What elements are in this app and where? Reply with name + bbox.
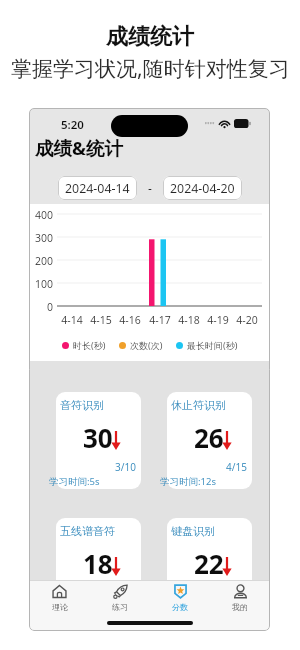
button[interactable]: 2024-04-20	[163, 176, 242, 200]
button[interactable]: 理论	[29, 584, 90, 614]
staticText: 分数	[172, 602, 188, 612]
staticText: 4-19	[204, 313, 232, 327]
staticText: 音符识别	[60, 398, 104, 412]
staticText: 30	[83, 420, 113, 455]
staticText: 3/10	[56, 460, 136, 474]
staticText: 最长时间(秒)	[187, 339, 238, 351]
button[interactable]: 五线谱音符	[56, 518, 141, 615]
staticText: 次数(次)	[130, 339, 163, 351]
staticText: 22	[194, 546, 224, 581]
staticText: 学习时间:9s	[49, 601, 100, 614]
staticText: 成绩统计	[106, 23, 194, 51]
staticText: 2024-04-14	[65, 180, 130, 197]
staticText: 休止符识别	[171, 398, 226, 412]
button[interactable]: 键盘识别	[167, 518, 252, 615]
staticText: 4-15	[87, 313, 115, 327]
staticText: 成绩&统计	[35, 135, 123, 160]
staticText: 理论	[52, 602, 68, 612]
staticText: 5/12	[167, 586, 247, 600]
staticText: 学习时间:5s	[49, 475, 100, 488]
staticText: 我的	[232, 602, 248, 612]
button[interactable]: 音符识别	[56, 392, 141, 489]
staticText: -	[137, 180, 163, 196]
staticText: 键盘识别	[171, 524, 215, 538]
staticText: 18	[83, 546, 113, 581]
staticText: 4/15	[167, 460, 247, 474]
staticText: 5:20	[61, 117, 84, 133]
staticText: 2024-04-20	[170, 180, 235, 197]
staticText: 学习时间:12s	[160, 475, 216, 488]
button[interactable]: 练习	[90, 584, 150, 614]
staticText: 0	[29, 300, 53, 314]
staticText: 4-17	[146, 313, 174, 327]
staticText: 时长(秒)	[73, 339, 106, 351]
staticText: 掌握学习状况,随时针对性复习	[11, 54, 290, 83]
staticText: 200	[29, 254, 53, 268]
staticText: 学习时间:7s	[160, 601, 211, 614]
button[interactable]: 分数	[150, 584, 210, 614]
staticText: 26	[194, 420, 224, 455]
staticText: 4-14	[58, 313, 86, 327]
staticText: 4-20	[233, 313, 261, 327]
staticText: 300	[29, 231, 53, 245]
staticText: 4-18	[175, 313, 203, 327]
button[interactable]: 2024-04-14	[58, 176, 137, 200]
staticText: 100	[29, 277, 53, 291]
staticText: 五线谱音符	[60, 524, 115, 538]
staticText: 练习	[112, 602, 128, 612]
button[interactable]: 休止符识别	[167, 392, 252, 489]
staticText: 4-16	[116, 313, 144, 327]
staticText: 400	[29, 208, 53, 222]
staticText: 2/8	[56, 586, 136, 600]
button[interactable]: 我的	[210, 584, 270, 614]
